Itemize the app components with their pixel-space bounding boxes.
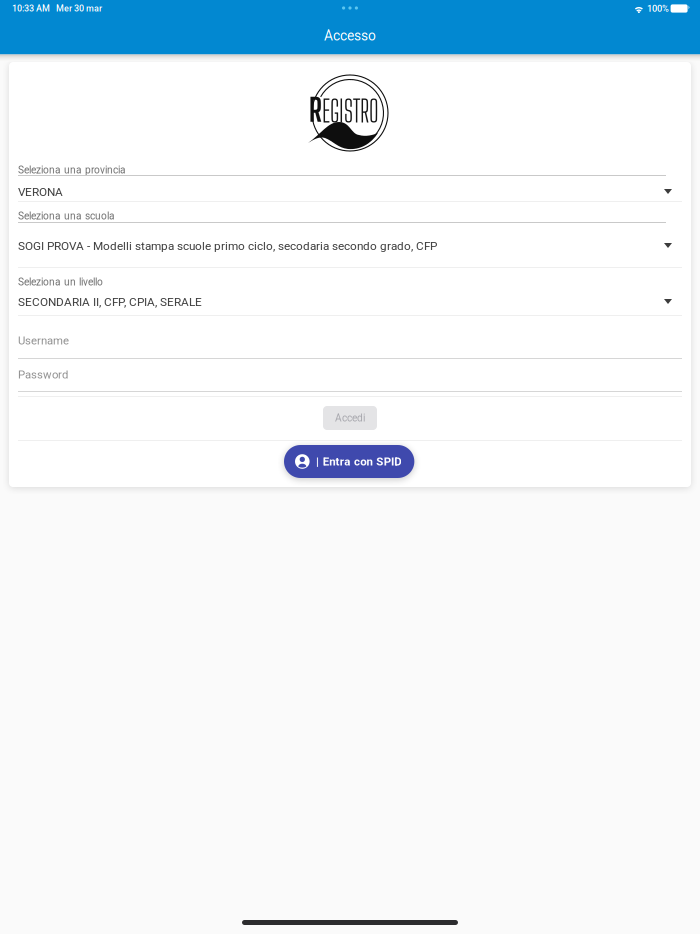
staticText: Seleziona una provincia [18,164,126,176]
staticText: SOGI PROVA - Modelli stampa scuole primo… [18,239,437,253]
button[interactable]: Accedi [323,406,377,430]
staticText: 100% [647,3,669,14]
button[interactable]: Seleziona un livello [9,268,691,316]
button[interactable]: Username [9,316,691,358]
staticText: VERONA [18,185,63,199]
button[interactable]: Seleziona una provincia [9,156,691,202]
staticText: EGISTRO [322,94,379,128]
staticText: Password [18,368,68,381]
button[interactable]: | Entra con SPID [284,445,414,478]
staticText: Accedi [335,412,365,424]
button[interactable]: Password [9,358,691,396]
staticText: 10:33 AM Mer 30 mar [12,3,102,14]
staticText: Username [18,334,69,347]
staticText: Accesso [324,28,376,44]
button[interactable]: Seleziona una scuola [9,202,691,268]
staticText: SECONDARIA II, CFP, CPIA, SERALE [18,295,202,309]
staticText: Seleziona un livello [18,276,103,288]
staticText: | Entra con SPID [316,455,401,468]
staticText: Seleziona una scuola [18,210,115,222]
staticText: R [309,91,322,128]
